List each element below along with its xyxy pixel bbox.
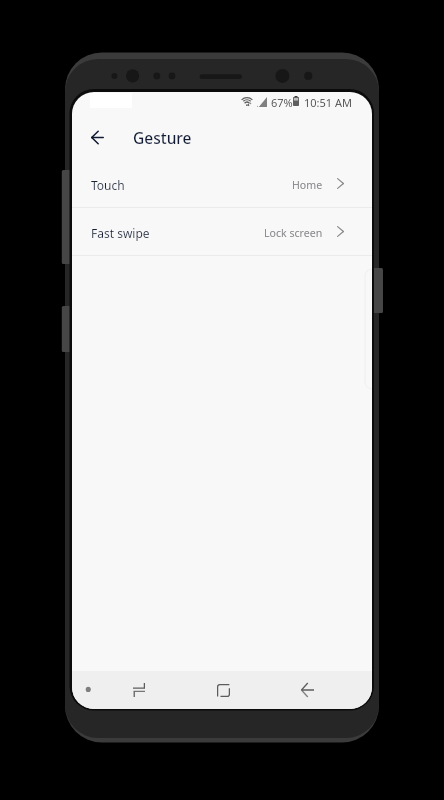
staticText: Touch	[91, 177, 125, 193]
button[interactable]: Fast swipe	[72, 208, 372, 255]
button[interactable]: Recents	[97, 671, 181, 709]
staticText: Fast swipe	[91, 225, 150, 241]
staticText: Gesture	[133, 127, 192, 148]
staticText: Home	[292, 178, 323, 192]
button[interactable]: Touch	[72, 160, 372, 207]
button[interactable]: Back	[265, 671, 349, 709]
button[interactable]: Home	[181, 671, 265, 709]
staticText: Lock screen	[264, 226, 323, 240]
staticText: 10:51 AM	[304, 95, 352, 110]
button[interactable]: Back	[79, 119, 115, 155]
staticText: 67%	[271, 95, 293, 110]
